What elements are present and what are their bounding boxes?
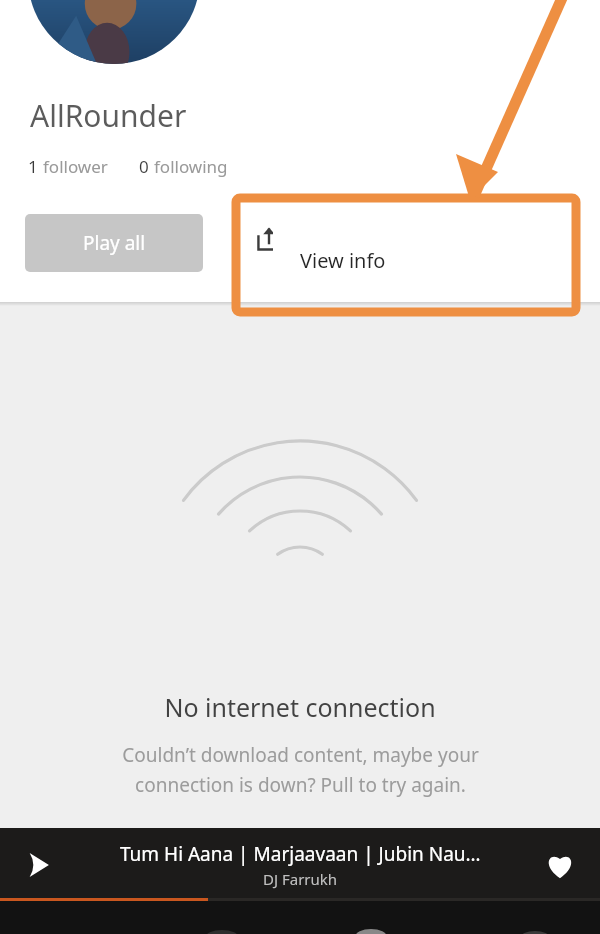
staticText: View info bbox=[300, 247, 386, 274]
staticText: 1 bbox=[28, 155, 38, 178]
staticText: Couldn’t download content, maybe your co… bbox=[122, 742, 479, 797]
staticText: following bbox=[154, 155, 228, 178]
staticText: follower bbox=[43, 155, 108, 178]
staticText: 0 bbox=[139, 155, 149, 178]
staticText: Tum Hi Aana | Marjaavaan | Jubin Nau… bbox=[120, 841, 481, 867]
button[interactable]: Play bbox=[0, 828, 600, 901]
button[interactable]: Play all bbox=[25, 214, 203, 272]
button[interactable]: Play bbox=[14, 841, 62, 889]
button[interactable]: View info bbox=[273, 220, 600, 300]
staticText: DJ Farrukh bbox=[263, 869, 338, 889]
button[interactable]: Share bbox=[247, 217, 291, 261]
button[interactable]: Favorite bbox=[536, 841, 584, 889]
staticText: Play all bbox=[83, 230, 146, 256]
staticText: AllRounder bbox=[30, 95, 187, 136]
staticText: No internet connection bbox=[164, 690, 436, 724]
